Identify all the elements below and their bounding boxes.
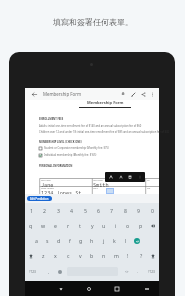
button[interactable]: i [110,218,122,233]
button[interactable]: r [62,218,74,233]
staticText: Children over 12 and under 18: initial o… [39,130,170,134]
button[interactable]: j [98,233,109,248]
button[interactable]: Delete [125,172,134,182]
button[interactable]: First Name [40,179,92,187]
button[interactable]: Backspace [147,218,159,233]
button[interactable]: Shift [147,248,159,263]
button[interactable]: Text size up [106,172,115,182]
staticText: 9 [137,207,140,214]
staticText: ? [140,252,143,259]
button[interactable]: s [42,233,53,248]
button[interactable]: x [49,248,61,263]
button[interactable]: w [37,218,49,233]
button[interactable]: Arrows [121,263,133,281]
button[interactable]: z [37,248,49,263]
button[interactable]: l [120,233,131,248]
button[interactable]: 6 [92,203,105,218]
staticText: Student or Corporate membership (Monthly… [44,146,109,150]
button[interactable]: 5 [79,203,92,218]
button[interactable]: MI [146,179,175,187]
staticText: 6 [97,207,100,214]
button[interactable]: Symbols [26,263,38,281]
button[interactable]: u [98,218,110,233]
button[interactable]: p [135,218,147,233]
button[interactable]: Home [83,283,95,295]
staticText: 4 [70,207,73,214]
staticText: ENROLLMENT FEES [39,117,64,121]
button[interactable]: 4 [65,203,78,218]
button[interactable]: More [135,172,144,182]
button[interactable]: e [49,218,61,233]
staticText: d [57,237,61,244]
button[interactable]: Recent apps [111,283,123,295]
staticText: q [29,222,33,229]
button[interactable]: Street Address [40,187,92,195]
button[interactable]: Add person [118,88,128,100]
staticText: p [139,222,143,229]
button[interactable]: t [74,218,86,233]
button[interactable]: Shift [25,248,37,263]
button[interactable]: 3 [52,203,65,218]
button[interactable]: Last Name [92,179,144,187]
button[interactable]: Numbers [145,263,157,281]
button[interactable]: Enter [131,233,142,248]
button[interactable]: ! [122,248,134,263]
button[interactable]: k [109,233,120,248]
button[interactable]: 9 [132,203,145,218]
button[interactable]: ? [135,248,147,263]
button[interactable]: Back [55,283,67,295]
button[interactable]: f [64,233,75,248]
button[interactable]: o [122,218,134,233]
button[interactable]: 8 [119,203,132,218]
staticText: a [35,237,38,244]
button[interactable]: More options [148,88,156,100]
button[interactable]: Edit Prediction [30,196,49,201]
button[interactable]: d [53,233,64,248]
staticText: ?123 [29,270,36,274]
button[interactable]: h [86,233,97,248]
button[interactable]: g [75,233,86,248]
staticText: Membership Form [87,100,124,105]
button[interactable]: Share [138,88,148,100]
button[interactable]: 2 [38,203,51,218]
staticText: w [41,222,46,229]
staticText: u [102,222,106,229]
staticText: ?123 [148,270,155,274]
button[interactable]: b [86,248,98,263]
staticText: 7 [110,207,113,214]
staticText: Membership Form [43,91,82,97]
staticText: f [69,237,71,244]
button[interactable]: Back [25,88,43,100]
button[interactable]: n [98,248,110,263]
staticText: PERSONAL INFORMATION [39,164,73,168]
staticText: z [42,252,45,259]
button[interactable]: Individual membership (Monthly fee: $165… [39,153,97,157]
staticText: Individual membership (Monthly fee: $165… [44,153,97,157]
button[interactable]: Emoji [54,263,66,281]
button[interactable]: 0 [146,203,159,218]
button[interactable]: Apt # [92,187,144,195]
button[interactable]: Sign [128,88,138,100]
button[interactable]: 7 [105,203,118,218]
button[interactable]: v [74,248,86,263]
staticText: 5 [84,207,87,214]
staticText: , [48,269,50,275]
button[interactable]: Hide keyboard [141,283,153,295]
staticText: 0 [151,207,154,214]
staticText: g [79,237,83,244]
button[interactable]: a [31,233,42,248]
button[interactable]: Student or Corporate membership (Monthly… [39,146,109,150]
button[interactable]: Text size down [116,172,125,182]
staticText: MEMBERSHIP LEVEL (CHECK ONE) [39,140,82,144]
staticText: m [114,252,119,259]
button[interactable]: q [25,218,37,233]
button[interactable]: y [86,218,98,233]
button[interactable]: c [62,248,74,263]
button[interactable]: 1 [25,203,38,218]
staticText: First Name [41,179,51,182]
button[interactable]: m [110,248,122,263]
button[interactable]: City [146,187,175,195]
